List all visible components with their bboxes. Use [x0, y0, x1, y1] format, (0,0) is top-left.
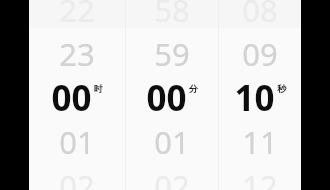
button[interactable]: 02 [29, 164, 125, 190]
button[interactable]: 08 [219, 0, 301, 32]
button[interactable]: 01 [29, 120, 125, 164]
button[interactable]: 01 [126, 120, 218, 164]
button[interactable]: 23 [29, 32, 125, 76]
staticText: 时 [94, 83, 103, 94]
staticText: 01 [154, 121, 190, 163]
staticText: 09 [242, 33, 278, 75]
button[interactable]: 59 [126, 32, 218, 76]
button[interactable]: 09 [219, 32, 301, 76]
staticText: 分 [189, 83, 198, 94]
button[interactable]: 00 [126, 74, 218, 118]
staticText: 59 [154, 33, 190, 75]
staticText: 秒 [277, 83, 286, 94]
staticText: 12 [242, 165, 278, 190]
staticText: 22 [59, 0, 95, 31]
button[interactable]: 00 [29, 74, 125, 118]
staticText: 02 [59, 165, 95, 190]
staticText: 58 [154, 0, 190, 31]
staticText: 01 [59, 121, 95, 163]
staticText: 08 [242, 0, 278, 31]
staticText: 00 [146, 74, 187, 118]
button[interactable]: 22 [29, 0, 125, 32]
staticText: 23 [59, 33, 95, 75]
button[interactable]: 58 [126, 0, 218, 32]
other: Time picker [29, 0, 301, 190]
staticText: 00 [51, 74, 92, 118]
button[interactable]: 11 [219, 120, 301, 164]
button[interactable]: 02 [126, 164, 218, 190]
button[interactable]: 12 [219, 164, 301, 190]
staticText: 10 [234, 74, 275, 118]
staticText: 02 [154, 165, 190, 190]
staticText: 11 [242, 121, 278, 163]
button[interactable]: 10 [219, 74, 301, 118]
